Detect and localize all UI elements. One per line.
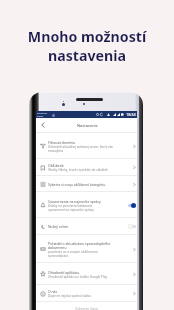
button[interactable]: Nočný režim	[36, 218, 137, 235]
staticText: O nás	[48, 289, 58, 294]
button[interactable]: Obľúbené	[36, 159, 137, 176]
staticText: vodafone	[37, 112, 48, 115]
staticText: Mnoho možností nastavenia	[0, 27, 174, 65]
button[interactable]: Upozornenia na najnovšie správy	[36, 192, 137, 218]
staticText: Dajte mi nejakú spätnú väzbu	[48, 294, 91, 298]
staticText: Odstrániť aktuálnej webovej server, ktor…	[48, 145, 113, 153]
staticText: Vyberte si svoju obľúbenú kategóriu	[48, 182, 106, 187]
button[interactable]: Požiadať o aktualizáciu spravodajského d…	[36, 235, 137, 263]
button[interactable]: Filtrovať doménu	[36, 133, 137, 159]
button[interactable]: O nás	[36, 285, 137, 302]
staticText: Filtrovať doménu	[48, 140, 76, 145]
staticText: Ohodnotiť aplikáciu	[48, 270, 80, 275]
staticText: Ohodnotiť aplikáciu v službe Google Play	[48, 275, 108, 279]
staticText: Požiadať o aktualizáciu spravodajského d…	[48, 241, 111, 250]
staticText: 18:34	[126, 112, 136, 117]
staticText: vodaf	[37, 115, 44, 118]
staticText: Krútky na povolenie/zakázanie upozornení…	[48, 204, 94, 212]
button[interactable]: Vyberte si svoju obľúbenú kategóriu	[36, 176, 137, 192]
staticText: Nočný režim	[48, 224, 68, 229]
staticText: Všetky články, ktoré si pridáte do zálož…	[48, 168, 108, 172]
staticText: povolenie vo a svojom obľúbenom spravoda…	[48, 250, 98, 258]
button[interactable]: Ohodnotiť aplikáciu	[36, 263, 137, 285]
staticText: Upozornenia na najnovšie správy	[48, 199, 101, 204]
staticText: Trávenie času	[36, 306, 137, 310]
button[interactable]: Back	[38, 120, 48, 130]
staticText: Obľúbené	[48, 163, 64, 168]
staticText: Nastavenie	[77, 123, 98, 128]
